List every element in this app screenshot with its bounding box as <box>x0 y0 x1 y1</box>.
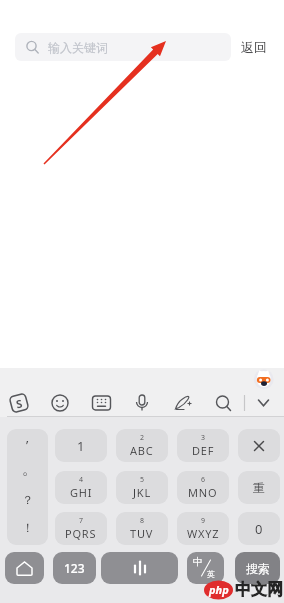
staticText: 4 <box>79 475 84 485</box>
staticText: 7 <box>79 516 84 526</box>
staticText: 8 <box>140 516 145 526</box>
button[interactable]: 2 <box>116 429 168 462</box>
button[interactable]: 7 <box>55 512 107 545</box>
staticText: JKL <box>133 485 151 500</box>
staticText: DEF <box>192 443 215 458</box>
staticText: 0 <box>255 520 263 538</box>
staticText: 3 <box>201 433 206 443</box>
button[interactable]: 中 <box>187 552 224 584</box>
staticText: 。 <box>22 460 37 479</box>
staticText: ！ <box>22 520 34 535</box>
button[interactable] <box>88 390 114 416</box>
button[interactable]: 0 <box>238 512 280 545</box>
button[interactable] <box>238 429 280 462</box>
button[interactable]: 6 <box>177 471 229 504</box>
staticText: 6 <box>201 475 206 485</box>
button[interactable] <box>211 390 237 416</box>
staticText: GHI <box>70 485 93 500</box>
staticText: ABC <box>130 443 154 458</box>
button[interactable]: 返回 <box>238 38 270 56</box>
button[interactable] <box>129 390 155 416</box>
staticText: PQRS <box>65 526 97 541</box>
button[interactable]: 123 <box>53 552 96 584</box>
staticText: 英 <box>207 569 215 579</box>
button[interactable]: 8 <box>116 512 168 545</box>
staticText: 5 <box>140 475 145 485</box>
button[interactable]: 5 <box>116 471 168 504</box>
button[interactable]: 搜索 <box>235 552 280 584</box>
staticText: WXYZ <box>187 526 220 541</box>
staticText: php <box>209 582 229 597</box>
button[interactable]: ’ <box>7 429 48 545</box>
button[interactable]: 1 <box>55 429 107 462</box>
button[interactable] <box>250 390 276 416</box>
staticText: S <box>15 395 25 411</box>
button[interactable]: 9 <box>177 512 229 545</box>
staticText: 123 <box>64 560 85 576</box>
button[interactable]: 重 <box>238 471 280 504</box>
staticText: ？ <box>22 492 34 507</box>
staticText: 9 <box>201 516 206 526</box>
staticText: 搜索 <box>246 561 270 576</box>
staticText: 中文网 <box>235 580 283 600</box>
staticText: ’ <box>26 436 29 454</box>
button[interactable] <box>6 390 32 416</box>
button[interactable] <box>170 390 196 416</box>
button[interactable] <box>101 552 178 584</box>
staticText: 重 <box>253 480 265 495</box>
staticText: MNO <box>188 485 218 500</box>
button[interactable] <box>5 552 44 584</box>
button[interactable] <box>47 390 73 416</box>
staticText: 返回 <box>241 39 267 55</box>
button[interactable]: 输入关键词 <box>15 33 231 61</box>
button[interactable]: 3 <box>177 429 229 462</box>
staticText: TUV <box>130 526 154 541</box>
button[interactable]: 4 <box>55 471 107 504</box>
staticText: 输入关键词 <box>48 40 108 55</box>
staticText: 2 <box>140 433 145 443</box>
staticText: 中 <box>193 555 203 568</box>
staticText: 1 <box>77 437 85 455</box>
